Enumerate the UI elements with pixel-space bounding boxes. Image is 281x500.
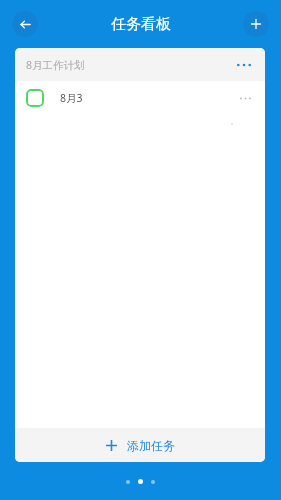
button[interactable]: Back <box>12 11 38 37</box>
button[interactable]: 8月工作计划 <box>15 48 265 81</box>
button[interactable]: Board options <box>234 55 254 75</box>
button[interactable]: Task options <box>236 89 254 107</box>
button[interactable]: Toggle task complete <box>26 89 44 107</box>
button[interactable]: Toggle task complete <box>15 81 265 115</box>
staticText: 8月3 <box>60 91 83 105</box>
button[interactable]: Add board <box>243 11 269 37</box>
staticText: 8月工作计划 <box>26 58 85 72</box>
staticText: 添加任务 <box>127 438 175 453</box>
staticText: 任务看板 <box>111 15 171 34</box>
button[interactable]: 添加任务 <box>15 428 265 462</box>
